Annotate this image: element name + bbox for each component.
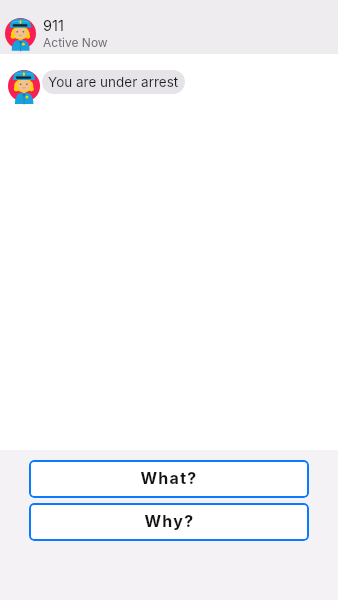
staticText: 911 — [43, 17, 64, 35]
staticText: You are under arrest — [48, 74, 179, 90]
other: Contact avatar — [5, 18, 36, 49]
button[interactable]: You are under arrest — [42, 70, 185, 94]
other: Sender avatar — [8, 70, 40, 102]
staticText: What? — [140, 468, 198, 487]
staticText: Why? — [144, 511, 195, 530]
button[interactable]: Why? — [29, 503, 309, 541]
staticText: Active Now — [43, 35, 108, 50]
button[interactable]: Contact avatar — [0, 0, 338, 54]
button[interactable]: What? — [29, 460, 309, 498]
